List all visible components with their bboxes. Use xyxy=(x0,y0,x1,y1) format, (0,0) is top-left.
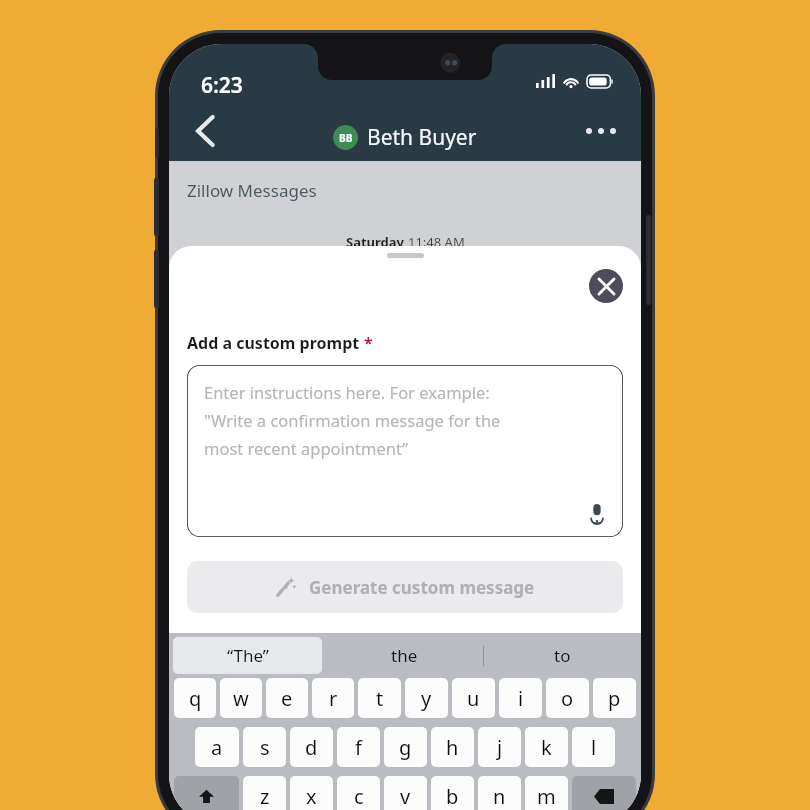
staticText: g xyxy=(399,734,412,761)
staticText: the xyxy=(391,644,418,667)
staticText: to xyxy=(554,644,571,667)
button[interactable]: g xyxy=(384,727,427,767)
staticText: p xyxy=(608,685,621,712)
staticText: “The” xyxy=(227,644,269,667)
button[interactable]: BB xyxy=(333,123,477,152)
staticText: q xyxy=(189,685,202,712)
button[interactable]: q xyxy=(174,678,216,718)
button[interactable]: Enter instructions here. For example: xyxy=(187,365,623,537)
button[interactable]: y xyxy=(405,678,448,718)
staticText: a xyxy=(211,734,223,761)
button[interactable]: z xyxy=(243,776,286,810)
staticText: Zillow Messages xyxy=(187,179,317,202)
button[interactable]: d xyxy=(290,727,333,767)
staticText: l xyxy=(591,734,597,761)
staticText: BB xyxy=(339,131,353,145)
button[interactable]: m xyxy=(525,776,568,810)
staticText: m xyxy=(537,783,556,810)
button[interactable]: o xyxy=(546,678,589,718)
staticText: k xyxy=(541,734,552,761)
button[interactable]: w xyxy=(220,678,262,718)
staticText: i xyxy=(518,685,524,712)
button[interactable]: e xyxy=(266,678,308,718)
staticText: z xyxy=(260,783,270,810)
button[interactable]: to xyxy=(484,637,641,674)
button[interactable]: a xyxy=(195,727,239,767)
staticText: Enter instructions here. For example: xyxy=(204,381,490,403)
staticText: v xyxy=(400,783,411,810)
staticText: Beth Buyer xyxy=(367,123,477,152)
button[interactable]: n xyxy=(478,776,521,810)
button[interactable]: “The” xyxy=(173,637,322,674)
button[interactable]: r xyxy=(312,678,354,718)
staticText: h xyxy=(446,734,459,761)
button[interactable]: c xyxy=(337,776,380,810)
button[interactable]: u xyxy=(452,678,495,718)
button[interactable]: Back xyxy=(179,105,231,157)
button[interactable]: Voice input xyxy=(583,500,611,528)
staticText: r xyxy=(329,685,338,712)
button[interactable]: h xyxy=(431,727,474,767)
button[interactable]: l xyxy=(572,727,615,767)
staticText: Add a custom prompt xyxy=(187,332,364,354)
button[interactable]: s xyxy=(243,727,286,767)
staticText: Saturday xyxy=(346,233,408,251)
button[interactable]: x xyxy=(290,776,333,810)
staticText: 6:23 xyxy=(201,71,243,100)
staticText: o xyxy=(561,685,574,712)
button[interactable]: j xyxy=(478,727,521,767)
staticText: y xyxy=(421,685,432,712)
button[interactable]: p xyxy=(593,678,636,718)
staticText: e xyxy=(281,685,293,712)
staticText: n xyxy=(493,783,506,810)
staticText: d xyxy=(305,734,318,761)
staticText: w xyxy=(233,685,249,712)
button[interactable]: Delete xyxy=(572,776,636,810)
staticText: "Write a confirmation message for the xyxy=(204,409,501,431)
button[interactable]: b xyxy=(431,776,474,810)
staticText: * xyxy=(364,332,373,354)
button[interactable]: the xyxy=(326,637,483,674)
button[interactable]: t xyxy=(358,678,401,718)
staticText: j xyxy=(497,734,503,761)
staticText: 11:48 AM xyxy=(408,233,465,251)
staticText: most recent appointment” xyxy=(204,437,409,459)
staticText: Generate custom message xyxy=(309,576,535,599)
staticText: u xyxy=(467,685,480,712)
staticText: f xyxy=(355,734,362,761)
button[interactable]: v xyxy=(384,776,427,810)
button[interactable]: f xyxy=(337,727,380,767)
staticText: s xyxy=(260,734,270,761)
button[interactable]: Generate custom message xyxy=(187,561,623,613)
button[interactable]: Close xyxy=(589,269,623,303)
staticText: c xyxy=(354,783,364,810)
button[interactable]: Shift xyxy=(174,776,239,810)
button[interactable]: i xyxy=(499,678,542,718)
staticText: t xyxy=(376,685,384,712)
staticText: x xyxy=(306,783,317,810)
button[interactable]: k xyxy=(525,727,568,767)
button[interactable]: More options xyxy=(575,105,627,157)
staticText: b xyxy=(446,783,459,810)
